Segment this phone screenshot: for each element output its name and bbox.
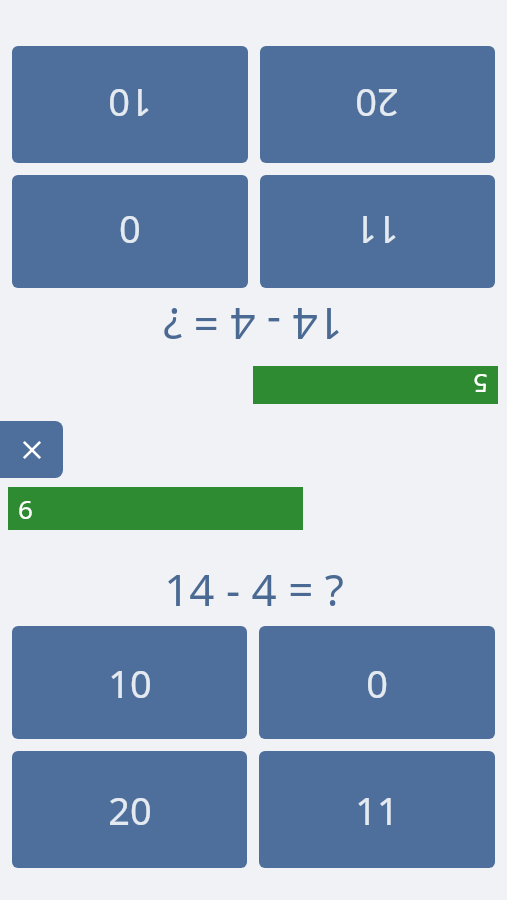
button[interactable]: 11 [260,175,495,288]
button[interactable]: 0 [12,175,248,288]
button[interactable]: 11 [259,751,495,868]
staticText: 10 [108,657,152,709]
staticText: 0 [119,205,141,257]
button[interactable]: 10 [12,46,248,163]
button[interactable]: 0 [259,626,495,739]
staticText: 14 - 4 = ? [164,559,344,619]
staticText: 10 [108,78,152,130]
staticText: 14 - 4 = ? [163,295,343,355]
button[interactable]: 10 [12,626,247,739]
button[interactable]: 20 [260,46,495,163]
staticText: 5 [473,367,488,402]
staticText: 11 [355,205,399,257]
staticText: 20 [355,78,399,130]
button[interactable]: 20 [12,751,247,868]
staticText: 20 [108,784,152,836]
staticText: 0 [366,657,388,709]
button[interactable]: Close [0,421,63,478]
staticText: 6 [18,491,33,526]
staticText: 11 [355,784,399,836]
